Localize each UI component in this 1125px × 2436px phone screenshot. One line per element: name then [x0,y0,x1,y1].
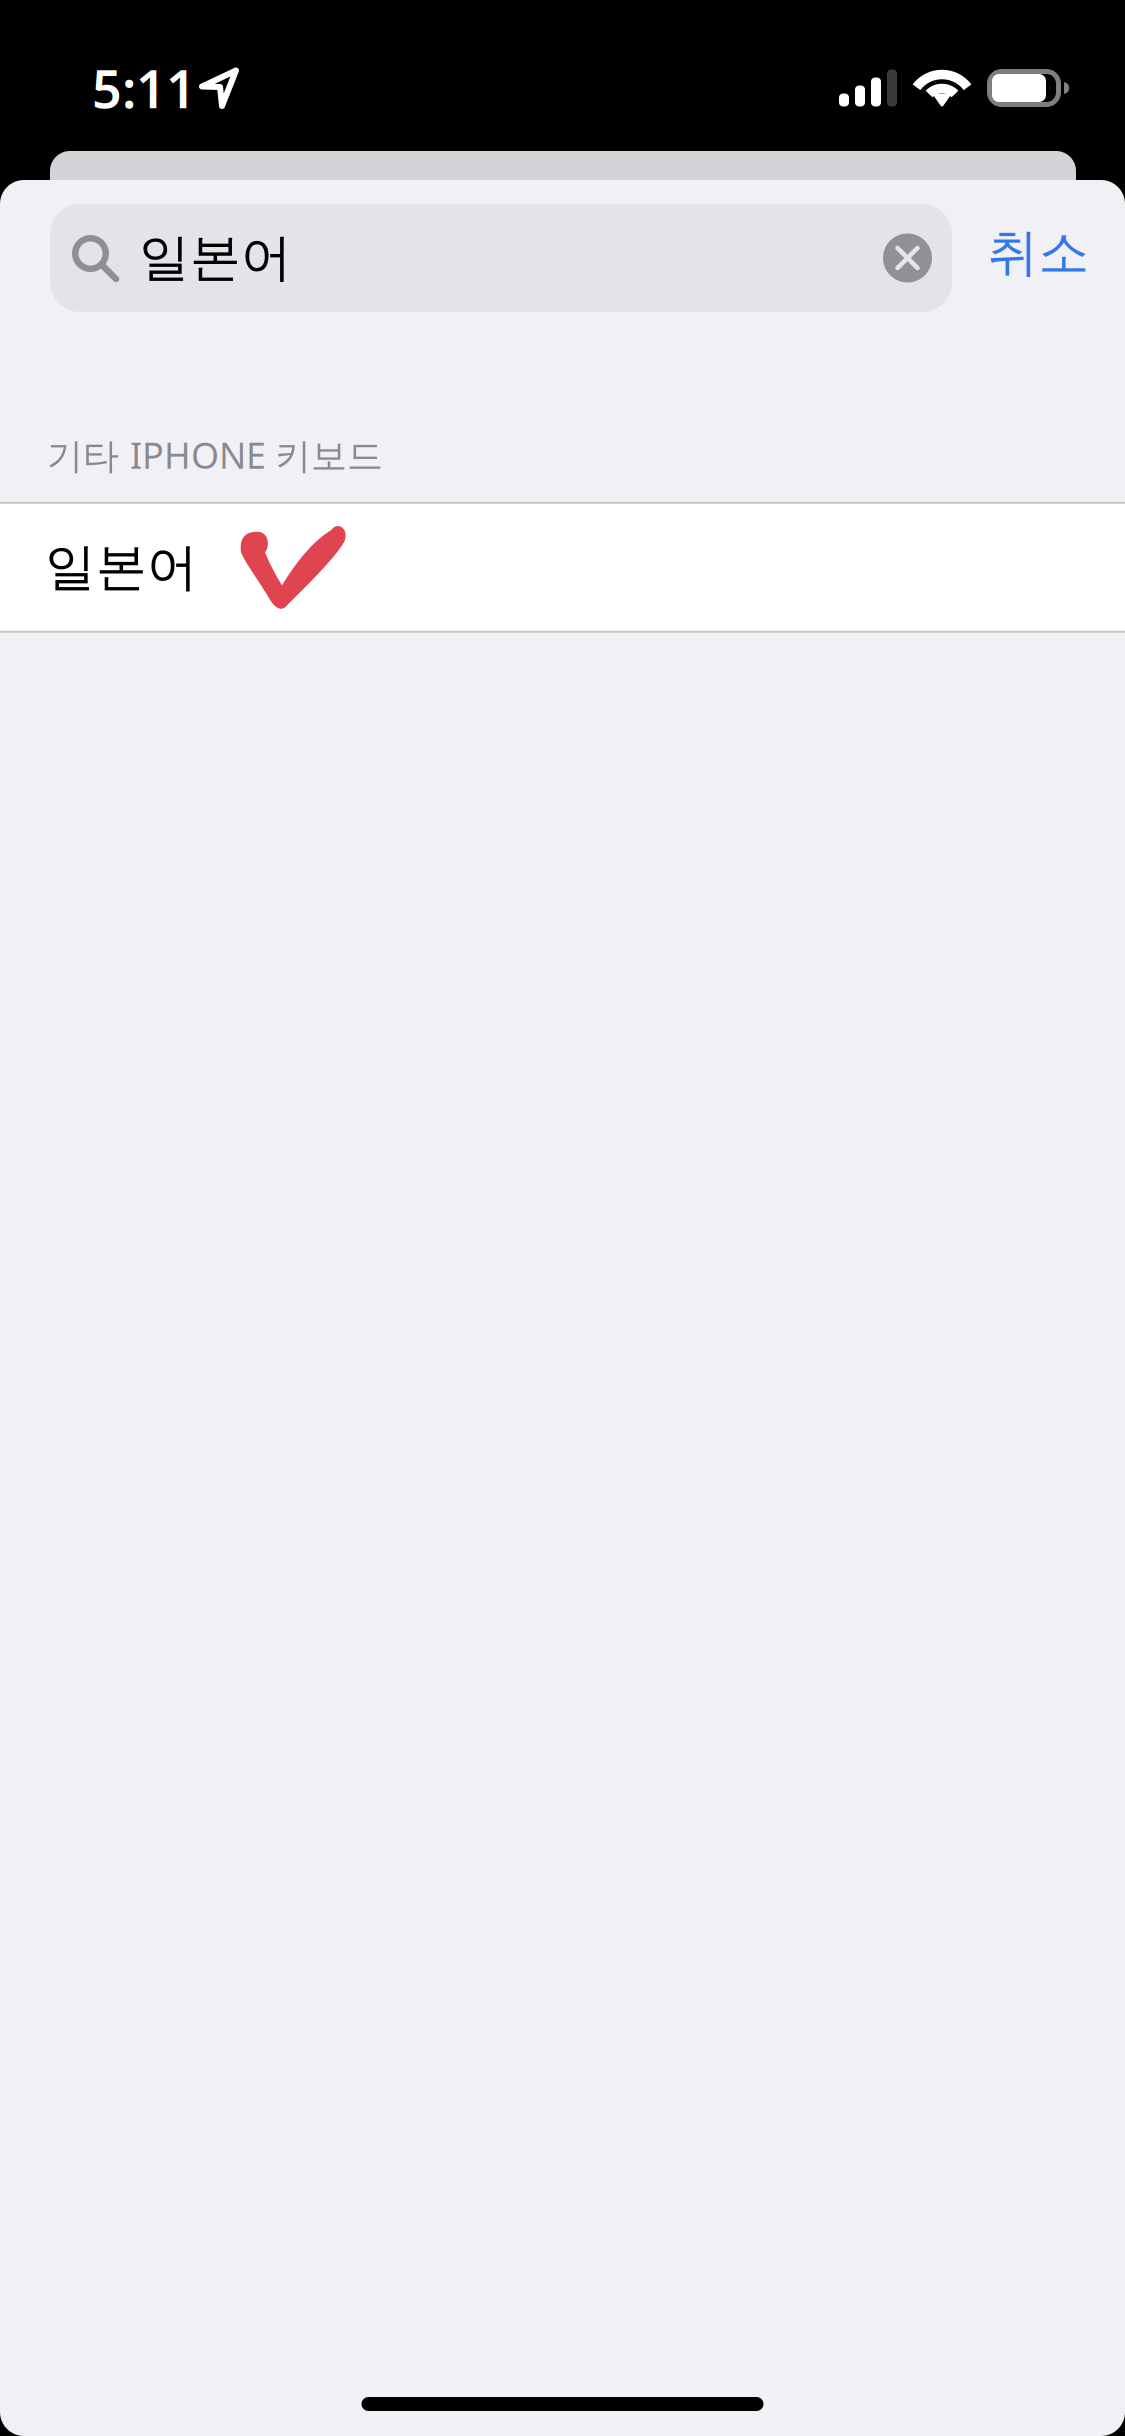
staticText: 일본어 [45,536,198,598]
staticText: 5:11 [92,53,196,123]
staticText: 취소 [987,222,1089,284]
button[interactable]: 취소 [952,204,1125,312]
button[interactable]: Clear search text [883,233,952,282]
button[interactable]: 일본어 [50,204,952,312]
staticText: 기타 IPHONE 키보드 [47,431,383,479]
staticText: 일본어 [139,227,292,289]
button[interactable]: 일본어 [0,502,1125,633]
